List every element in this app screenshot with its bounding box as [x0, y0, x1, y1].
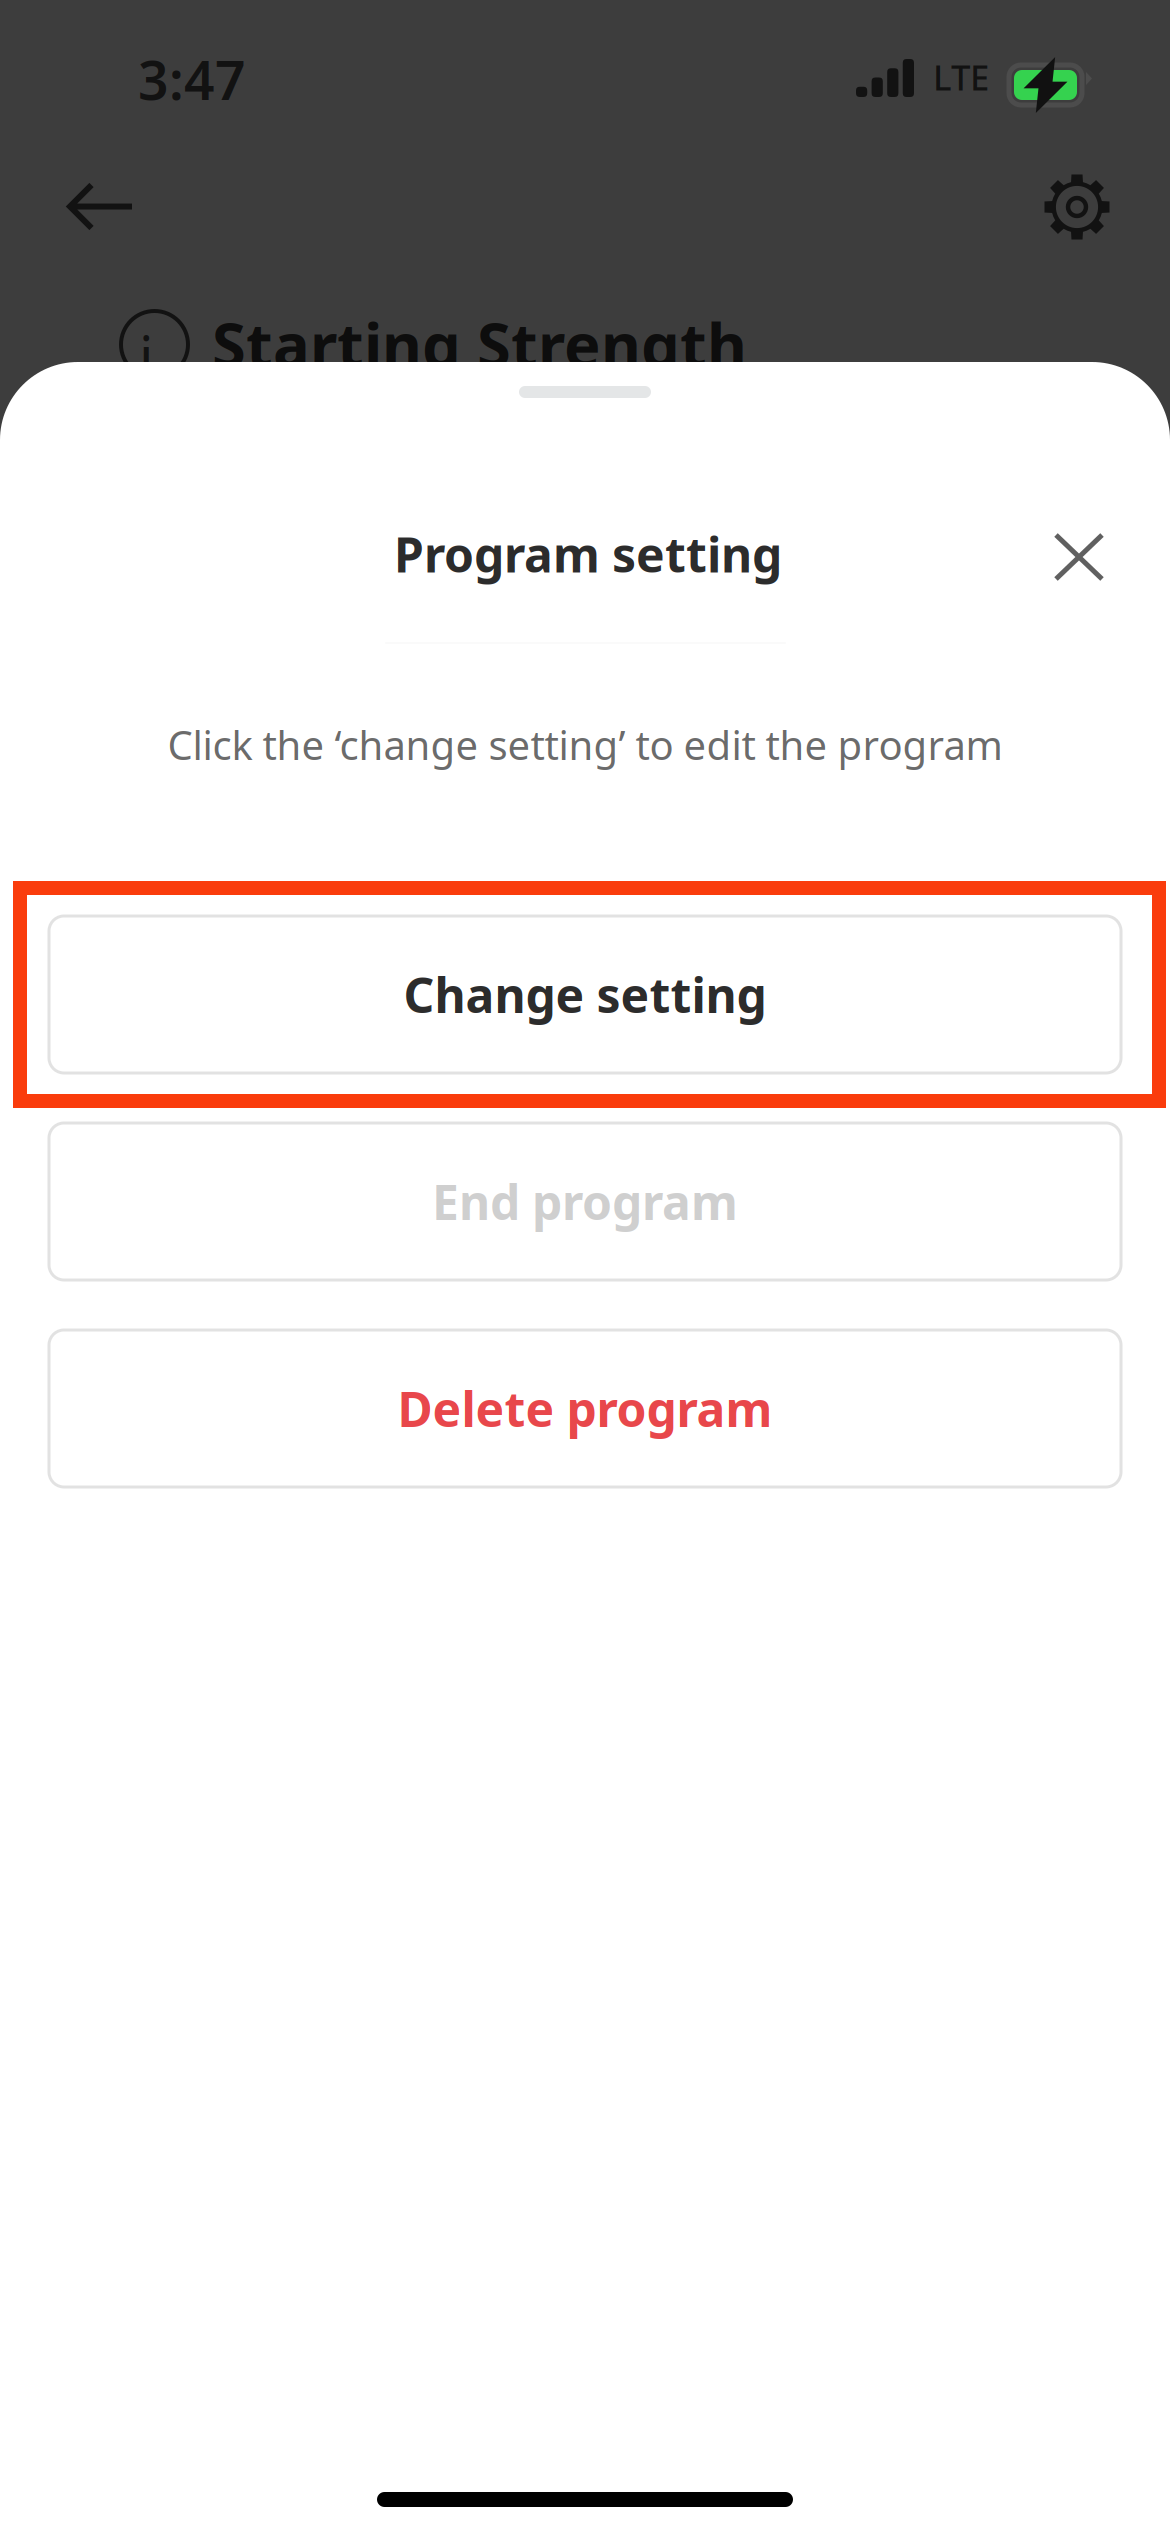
button[interactable]: Change setting: [49, 916, 1121, 1073]
button[interactable]: Delete program: [49, 1330, 1121, 1487]
staticText: 3:47: [138, 44, 246, 115]
staticText: Change setting: [403, 963, 766, 1026]
button[interactable]: Back: [35, 150, 167, 263]
button[interactable]: Close: [1028, 507, 1130, 607]
staticText: End program: [432, 1170, 738, 1233]
button[interactable]: Settings: [1011, 141, 1143, 273]
staticText: Starting Strength: [212, 303, 747, 384]
staticText: LTE: [933, 54, 989, 100]
staticText: Program setting: [394, 522, 782, 586]
button[interactable]: End program: [49, 1123, 1121, 1280]
staticText: Delete program: [397, 1377, 772, 1440]
staticText: i: [139, 318, 153, 392]
staticText: Click the ‘change setting’ to edit the p…: [167, 718, 1002, 771]
